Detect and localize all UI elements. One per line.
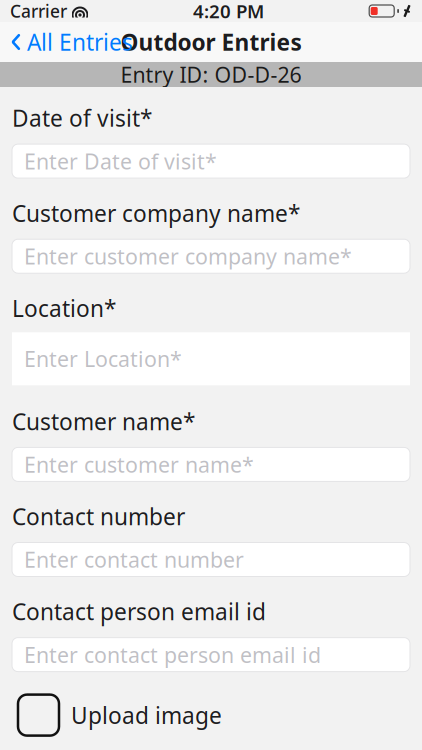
staticText: Enter Date of visit*	[24, 147, 217, 175]
staticText: Outdoor Entries	[120, 27, 301, 57]
staticText: Enter customer name*	[24, 450, 254, 478]
button[interactable]: All Entries	[0, 22, 143, 62]
button[interactable]: Upload image	[0, 695, 422, 736]
staticText: Contact number	[12, 501, 185, 531]
staticText: All Entries	[27, 27, 133, 57]
staticText: Upload image	[71, 700, 222, 730]
staticText	[67, 0, 72, 22]
staticText: Enter contact number	[24, 545, 244, 574]
button[interactable]: Enter customer name*	[0, 447, 422, 481]
button[interactable]: Enter Date of visit*	[0, 144, 422, 178]
staticText: Enter Location*	[24, 345, 182, 373]
staticText: Contact person email id	[12, 596, 266, 627]
button[interactable]: Enter customer company name*	[0, 239, 422, 273]
staticText: Carrier	[10, 0, 67, 22]
staticText: Customer name*	[12, 406, 195, 436]
staticText: Enter customer company name*	[24, 242, 352, 270]
staticText: Entry ID: OD-D-26	[120, 60, 301, 89]
button[interactable]: Enter contact number	[0, 542, 422, 576]
staticText: Enter contact person email id	[24, 640, 321, 669]
button[interactable]: Enter Location*	[0, 332, 422, 385]
staticText: Date of visit*	[12, 103, 152, 133]
staticText: Customer company name*	[12, 198, 300, 228]
button[interactable]: Enter contact person email id	[0, 638, 422, 672]
staticText: Location*	[12, 293, 116, 323]
staticText: 4:20 PM	[193, 0, 264, 23]
